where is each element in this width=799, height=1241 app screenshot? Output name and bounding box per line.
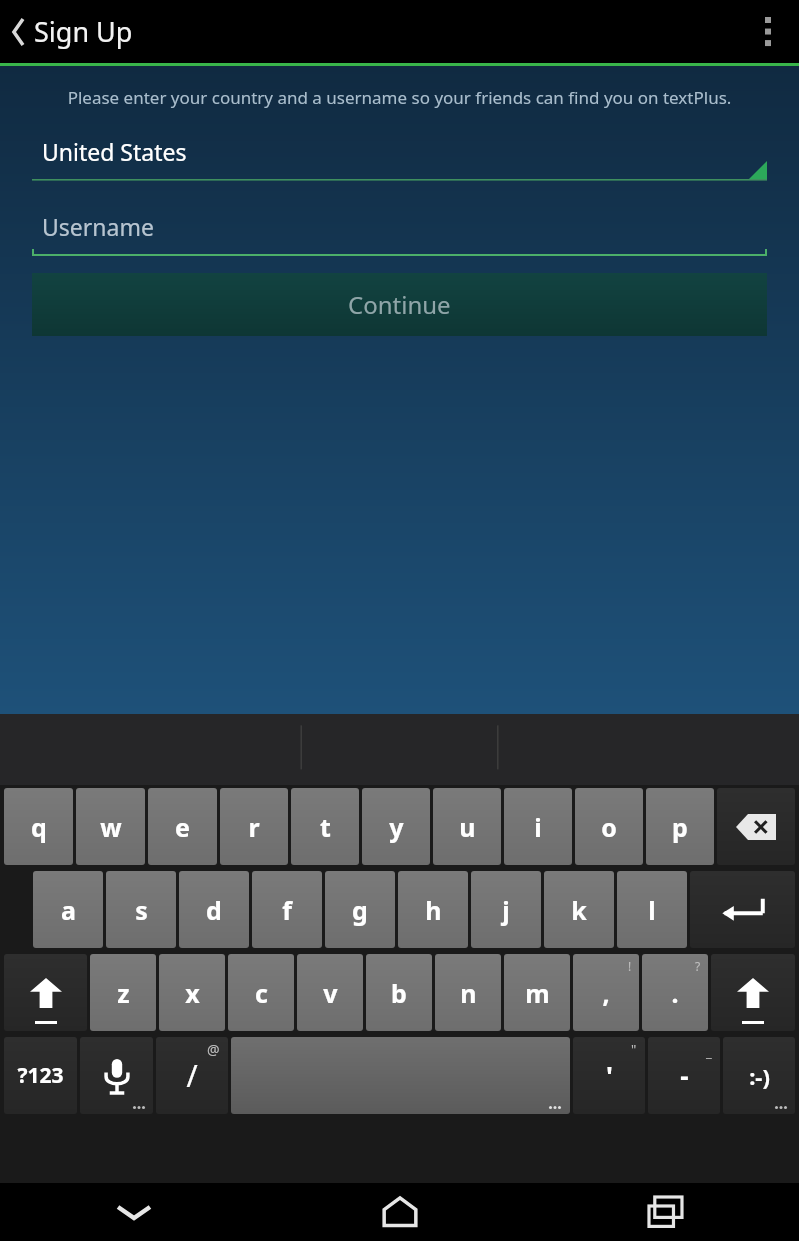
staticText: Continue bbox=[348, 288, 451, 321]
staticText: r bbox=[248, 810, 260, 844]
staticText: ! bbox=[628, 958, 632, 974]
staticText: _ bbox=[706, 1043, 712, 1061]
staticText: l bbox=[648, 893, 656, 927]
staticText: ?123 bbox=[17, 1061, 64, 1090]
staticText: / bbox=[186, 1055, 198, 1096]
staticText: w bbox=[100, 810, 122, 844]
button[interactable]: - bbox=[648, 1037, 720, 1114]
staticText: z bbox=[117, 976, 130, 1010]
button[interactable]: n bbox=[435, 954, 501, 1031]
button[interactable]: z bbox=[90, 954, 156, 1031]
button[interactable]: t bbox=[291, 788, 359, 865]
button[interactable]: h bbox=[398, 871, 468, 948]
button[interactable]: / bbox=[156, 1037, 228, 1114]
button[interactable]: u bbox=[433, 788, 501, 865]
button[interactable]: g bbox=[325, 871, 395, 948]
button[interactable]: v bbox=[297, 954, 363, 1031]
staticText: a bbox=[61, 893, 76, 927]
staticText: @ bbox=[207, 1040, 220, 1059]
button[interactable] bbox=[711, 954, 795, 1031]
staticText: t bbox=[320, 810, 331, 844]
button[interactable]: w bbox=[76, 788, 145, 865]
staticText: c bbox=[255, 976, 268, 1010]
button[interactable] bbox=[4, 954, 87, 1031]
staticText: m bbox=[525, 976, 550, 1010]
staticText: o bbox=[601, 810, 617, 844]
staticText: Username bbox=[42, 211, 154, 242]
button[interactable]: United States bbox=[32, 129, 767, 181]
button[interactable]: r bbox=[220, 788, 288, 865]
button[interactable]: :-) bbox=[723, 1037, 795, 1114]
staticText: f bbox=[282, 893, 292, 927]
staticText: " bbox=[631, 1040, 637, 1058]
staticText: - bbox=[680, 1058, 689, 1093]
button[interactable]: Home bbox=[267, 1183, 533, 1241]
button[interactable]: ' bbox=[573, 1037, 645, 1114]
staticText: e bbox=[175, 810, 190, 844]
staticText: h bbox=[425, 893, 442, 927]
button[interactable]: , bbox=[573, 954, 639, 1031]
button[interactable]: x bbox=[159, 954, 225, 1031]
button[interactable]: b bbox=[366, 954, 432, 1031]
button[interactable]: j bbox=[471, 871, 541, 948]
button[interactable]: Username bbox=[32, 202, 767, 257]
staticText: Please enter your country and a username… bbox=[14, 86, 785, 109]
staticText: v bbox=[323, 976, 338, 1010]
button[interactable]: Space bbox=[231, 1037, 570, 1114]
staticText: b bbox=[391, 976, 407, 1010]
staticText: p bbox=[672, 810, 688, 844]
button[interactable]: d bbox=[179, 871, 249, 948]
staticText: ? bbox=[695, 958, 701, 974]
staticText: k bbox=[571, 893, 587, 927]
button[interactable]: . bbox=[642, 954, 708, 1031]
staticText: n bbox=[460, 976, 477, 1010]
button[interactable]: Back bbox=[4, 7, 34, 57]
staticText: x bbox=[185, 976, 200, 1010]
staticText: j bbox=[502, 893, 510, 927]
button[interactable]: i bbox=[504, 788, 572, 865]
button[interactable]: k bbox=[544, 871, 614, 948]
button[interactable]: ?123 bbox=[4, 1037, 77, 1114]
button[interactable]: q bbox=[4, 788, 73, 865]
button[interactable]: f bbox=[252, 871, 322, 948]
button[interactable]: o bbox=[575, 788, 643, 865]
button[interactable]: Hide keyboard bbox=[0, 1183, 267, 1241]
staticText: Sign Up bbox=[34, 13, 133, 50]
button[interactable]: p bbox=[646, 788, 714, 865]
button[interactable] bbox=[690, 871, 795, 948]
staticText: y bbox=[389, 810, 404, 844]
button[interactable] bbox=[717, 788, 795, 865]
button[interactable]: c bbox=[228, 954, 294, 1031]
staticText: . bbox=[671, 976, 679, 1010]
staticText: i bbox=[534, 810, 542, 844]
staticText: q bbox=[31, 810, 47, 844]
button[interactable]: l bbox=[617, 871, 687, 948]
button[interactable]: m bbox=[504, 954, 570, 1031]
staticText: d bbox=[206, 893, 222, 927]
staticText: u bbox=[459, 810, 476, 844]
button[interactable]: a bbox=[33, 871, 103, 948]
staticText: , bbox=[602, 976, 610, 1010]
button[interactable]: y bbox=[362, 788, 430, 865]
button[interactable]: More options bbox=[737, 0, 799, 63]
staticText: ' bbox=[606, 1058, 613, 1093]
button[interactable]: Continue bbox=[32, 273, 767, 336]
button[interactable] bbox=[80, 1037, 153, 1114]
button[interactable]: s bbox=[106, 871, 176, 948]
staticText: g bbox=[352, 893, 368, 927]
staticText: :-) bbox=[749, 1061, 770, 1091]
staticText: United States bbox=[42, 136, 187, 167]
button[interactable]: e bbox=[148, 788, 217, 865]
button[interactable]: Recent apps bbox=[533, 1183, 799, 1241]
staticText: s bbox=[135, 893, 148, 927]
